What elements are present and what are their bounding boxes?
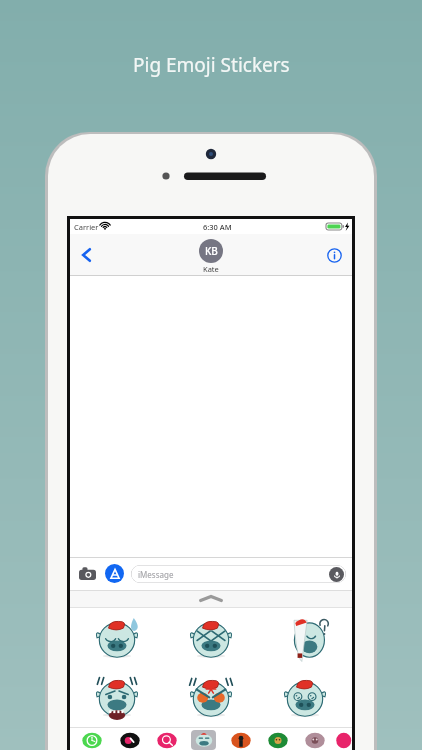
button[interactable]: Pig sticker 5 <box>164 668 258 727</box>
staticText: Kate <box>203 264 219 274</box>
staticText: Carrier <box>74 222 99 232</box>
button[interactable]: Pig sticker 4 <box>70 668 164 727</box>
button[interactable]: App tab 4 <box>185 727 222 750</box>
button[interactable]: iMessage <box>131 565 346 583</box>
button[interactable]: App tab 8 <box>333 727 350 750</box>
button[interactable]: Pig sticker 6 <box>258 668 352 727</box>
staticText: KB <box>205 244 218 258</box>
button[interactable]: Back <box>74 242 100 268</box>
button[interactable]: Dictate <box>329 567 344 582</box>
button[interactable]: Details <box>321 242 347 268</box>
button[interactable]: App tab 1 <box>72 727 110 750</box>
button[interactable]: Apps <box>105 564 124 583</box>
button[interactable]: Pig sticker 1 <box>70 609 164 668</box>
button[interactable]: Pig sticker 3 <box>258 609 352 668</box>
button[interactable]: Pig sticker 2 <box>164 609 258 668</box>
button[interactable]: Expand <box>70 590 352 607</box>
button[interactable]: Camera <box>76 563 98 585</box>
button[interactable]: App tab 3 <box>148 727 185 750</box>
staticText: Pig Emoji Stickers <box>133 52 290 78</box>
staticText: iMessage <box>138 569 174 580</box>
button[interactable]: App tab 6 <box>259 727 296 750</box>
button[interactable]: KB <box>199 239 223 274</box>
button[interactable]: App tab 7 <box>296 727 333 750</box>
staticText: 6:30 AM <box>203 222 232 232</box>
button[interactable]: App tab 5 <box>222 727 259 750</box>
button[interactable]: App tab 2 <box>110 727 148 750</box>
